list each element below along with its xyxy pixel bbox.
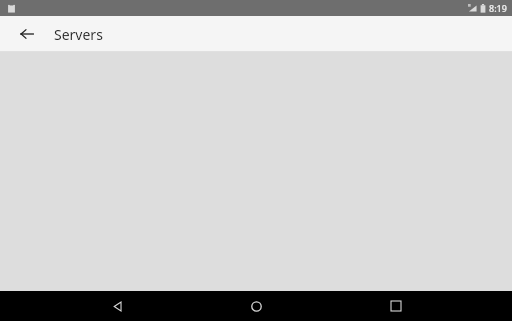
button[interactable]: Back (94, 291, 140, 321)
staticText: Servers (54, 25, 103, 44)
button[interactable]: Back (14, 21, 40, 47)
staticText: 8:19 (489, 2, 507, 14)
button[interactable]: Recent apps (373, 291, 419, 321)
button[interactable]: Home (233, 291, 279, 321)
